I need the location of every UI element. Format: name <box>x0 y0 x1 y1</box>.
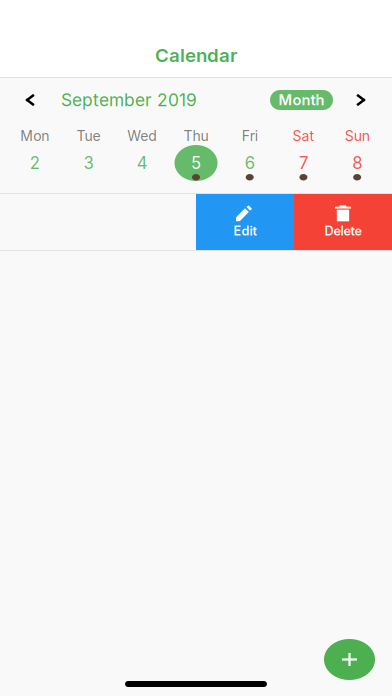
button[interactable]: Wed <box>115 122 169 193</box>
button[interactable]: Add event <box>324 639 375 680</box>
staticText: Month <box>278 91 324 109</box>
staticText: Thu <box>183 127 208 144</box>
staticText: Sun <box>345 127 370 144</box>
staticText: September 2019 <box>61 89 197 110</box>
staticText: Tue <box>77 127 101 144</box>
staticText: 2 <box>30 153 40 173</box>
staticText: Mon <box>20 127 49 144</box>
staticText: Fri <box>242 127 258 144</box>
button[interactable]: Previous month <box>0 85 61 115</box>
staticText: 5 <box>191 153 201 173</box>
button[interactable]: Month <box>270 90 333 110</box>
button[interactable]: Tue <box>62 122 115 193</box>
staticText: Sat <box>292 127 314 144</box>
button[interactable]: Sat <box>277 122 330 193</box>
staticText: 3 <box>84 153 94 173</box>
button[interactable]: Delete <box>294 194 392 250</box>
staticText: Calendar <box>155 44 237 67</box>
button[interactable]: Thu <box>169 122 223 193</box>
staticText: Edit <box>233 223 256 239</box>
staticText: Delete <box>324 223 361 239</box>
button[interactable]: Fri <box>223 122 277 193</box>
button[interactable]: Edit <box>196 194 294 250</box>
staticText: 6 <box>245 153 255 173</box>
button[interactable]: Sun <box>330 122 384 193</box>
staticText: 4 <box>137 153 148 173</box>
button[interactable]: Next month <box>333 85 392 115</box>
staticText: Wed <box>127 127 157 144</box>
button[interactable]: Mon <box>8 122 62 193</box>
staticText: 8 <box>352 153 362 173</box>
staticText: 7 <box>299 153 308 173</box>
